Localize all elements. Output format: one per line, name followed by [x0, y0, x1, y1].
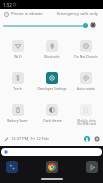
button[interactable]: Chrome	[46, 161, 58, 173]
button[interactable]: Auto-rotate	[69, 72, 103, 104]
button[interactable]: Search	[1, 148, 102, 156]
button[interactable]: Developer Settings	[35, 72, 69, 104]
button[interactable]: Bluetooth	[35, 40, 69, 72]
staticText: Bluetooth	[44, 54, 60, 58]
staticText: Torch	[13, 86, 22, 90]
staticText: Battery Saver	[7, 118, 28, 122]
button[interactable]: Wi-Fi	[0, 40, 35, 72]
button[interactable]: Do Not Disturb	[69, 40, 103, 72]
staticText: Auto-rotate	[77, 86, 95, 90]
button[interactable]: Phone	[6, 161, 18, 173]
button[interactable]: Mobile data	[69, 104, 103, 136]
button[interactable]: Dark theme	[35, 104, 69, 136]
staticText: Mobile data	[77, 118, 96, 122]
staticText: 12:07 PM, Fri 12 Feb	[11, 136, 49, 141]
staticText: Phone is vibrate	[11, 11, 43, 17]
button[interactable]: Torch	[0, 72, 35, 104]
staticText: Dark theme	[43, 118, 62, 122]
button[interactable]: Battery Saver	[0, 104, 35, 136]
staticText: Emergency calls only	[57, 11, 99, 17]
button[interactable]: Settings	[94, 136, 100, 142]
staticText: No SIM card	[77, 122, 96, 126]
staticText: Developer Settings	[37, 86, 67, 90]
button[interactable]: Brightness	[3, 25, 86, 27]
staticText: Wi-Fi	[14, 54, 22, 58]
staticText: 1:52	[3, 2, 12, 8]
staticText: Do Not Disturb	[74, 54, 98, 58]
button[interactable]: Auto brightness	[90, 22, 96, 28]
button[interactable]: Play Store	[86, 161, 98, 173]
button[interactable]: User	[84, 136, 90, 142]
button[interactable]: Edit	[3, 136, 9, 142]
